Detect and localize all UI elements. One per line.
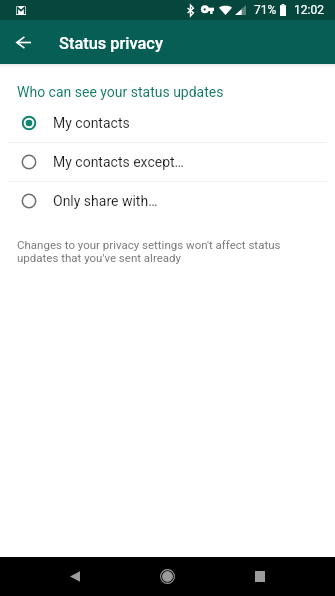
button[interactable]: Back (0, 20, 44, 64)
staticText: Who can see your status updates (17, 84, 224, 100)
staticText: Changes to your privacy settings won't a… (17, 238, 290, 264)
staticText: Only share with… (53, 193, 158, 209)
staticText: My contacts except… (53, 154, 184, 170)
staticText: My contacts (53, 115, 130, 131)
staticText: 71% (254, 3, 277, 17)
button[interactable]: My contacts except… (0, 143, 335, 181)
button[interactable]: My contacts (0, 104, 335, 142)
button[interactable]: Home (139, 557, 195, 596)
button[interactable]: Recent apps (232, 557, 288, 596)
button[interactable]: Only share with… (0, 182, 335, 220)
button[interactable]: Back (47, 557, 103, 596)
staticText: 12:02 (294, 3, 324, 17)
staticText: Status privacy (59, 34, 163, 53)
